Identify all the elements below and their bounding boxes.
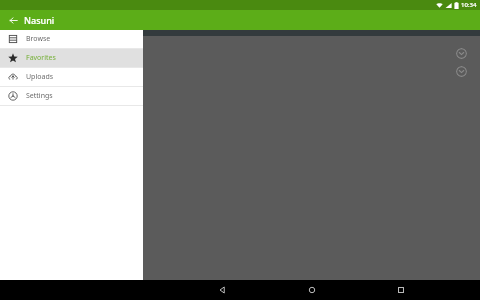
button[interactable]: Favorites bbox=[0, 49, 143, 67]
button[interactable]: Expand section one bbox=[456, 48, 467, 59]
button[interactable]: Home bbox=[302, 280, 322, 300]
button[interactable]: Recents bbox=[391, 280, 411, 300]
staticText: Browse bbox=[26, 34, 51, 44]
button[interactable]: Browse bbox=[0, 30, 143, 48]
button[interactable]: Uploads bbox=[0, 68, 143, 86]
button[interactable]: Settings bbox=[0, 87, 143, 105]
button[interactable]: Back bbox=[5, 12, 21, 28]
button[interactable]: Back bbox=[212, 280, 232, 300]
staticText: Nasuni bbox=[24, 14, 55, 26]
staticText: Settings bbox=[26, 91, 53, 101]
staticText: 10:34 bbox=[461, 1, 477, 9]
staticText: Uploads bbox=[26, 72, 54, 82]
button[interactable]: Expand section two bbox=[456, 66, 467, 77]
staticText: Favorites bbox=[26, 53, 56, 63]
